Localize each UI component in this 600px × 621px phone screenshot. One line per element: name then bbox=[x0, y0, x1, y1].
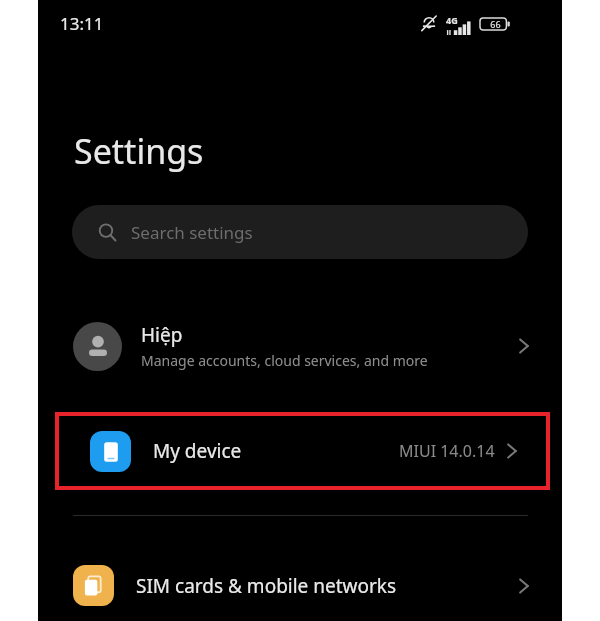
staticText: Hiệp bbox=[141, 322, 183, 348]
button[interactable]: Search settings bbox=[72, 205, 528, 259]
button[interactable]: My device bbox=[59, 416, 546, 486]
staticText: 4G bbox=[446, 14, 458, 26]
staticText: Settings bbox=[74, 128, 204, 174]
other: Open bbox=[518, 575, 530, 597]
button[interactable]: Hiệp bbox=[38, 305, 562, 387]
other: Open bbox=[518, 335, 530, 357]
staticText: Manage accounts, cloud services, and mor… bbox=[141, 351, 428, 370]
other: Open bbox=[506, 440, 518, 462]
staticText: 13:11 bbox=[60, 12, 104, 35]
staticText: My device bbox=[153, 438, 399, 464]
button[interactable]: SIM cards & mobile networks bbox=[38, 550, 562, 621]
staticText: Search settings bbox=[131, 221, 253, 244]
staticText: 66 bbox=[490, 18, 501, 30]
staticText: MIUI 14.0.14 bbox=[399, 440, 495, 462]
staticText: SIM cards & mobile networks bbox=[136, 573, 518, 599]
